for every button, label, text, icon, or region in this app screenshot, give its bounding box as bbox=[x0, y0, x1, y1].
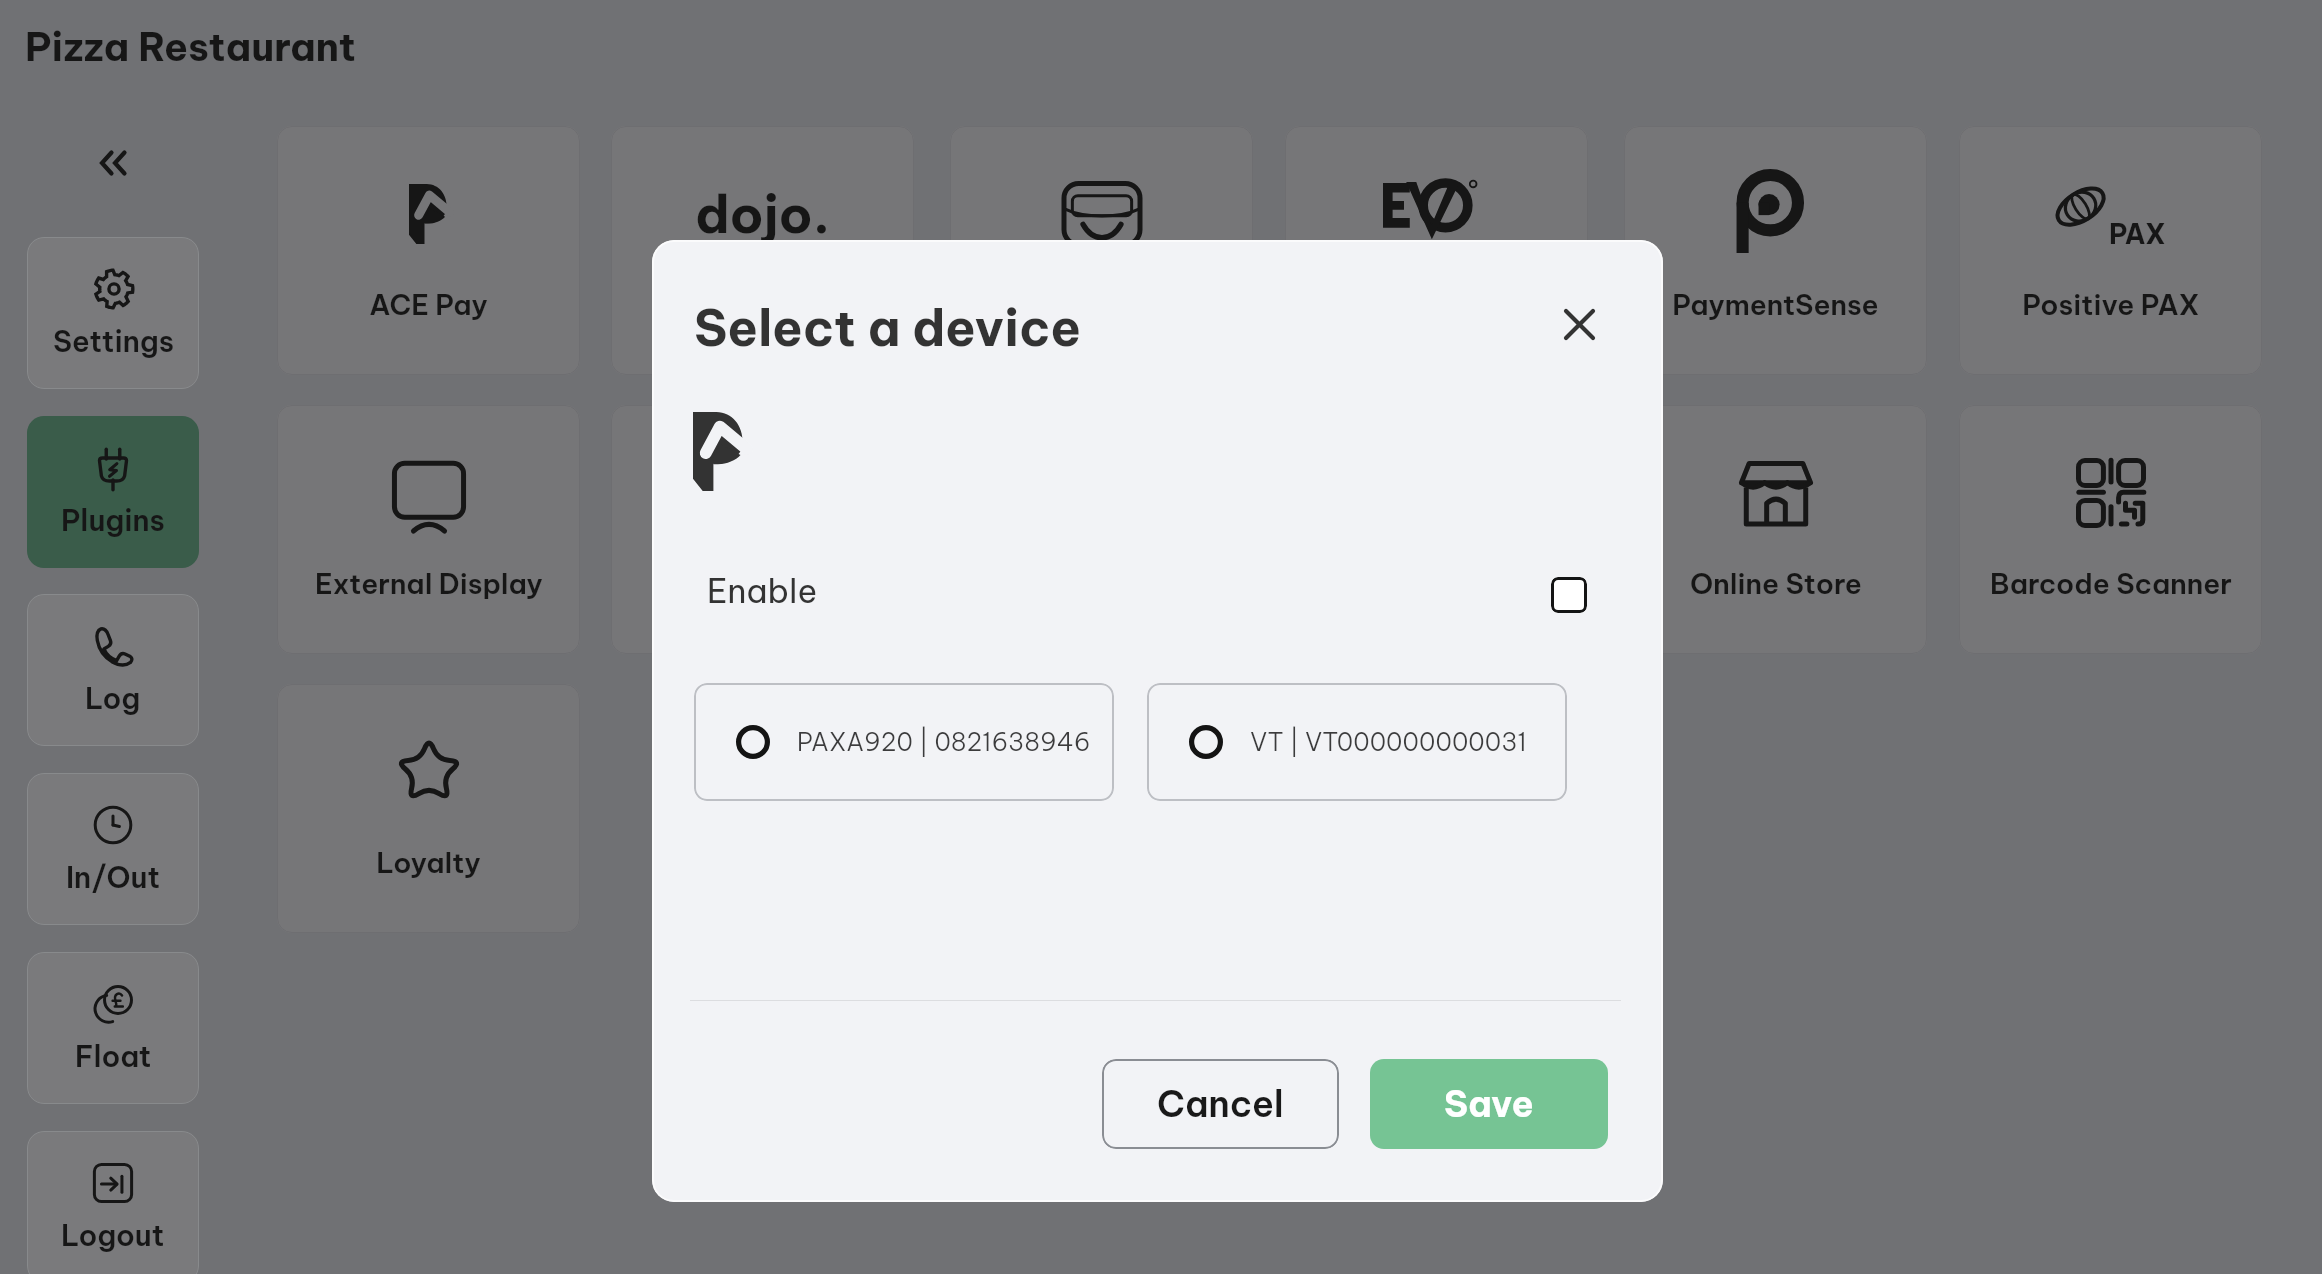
button[interactable]: Positive PAX bbox=[1959, 126, 2262, 375]
staticText: Plugins bbox=[61, 502, 165, 539]
staticText: PAXA920 | 0821638946 bbox=[797, 726, 1091, 758]
staticText: Save bbox=[1444, 1081, 1534, 1127]
button[interactable]: Logout bbox=[27, 1131, 199, 1274]
button[interactable]: External Display bbox=[277, 405, 580, 654]
button[interactable]: Enable bbox=[1551, 577, 1587, 613]
button[interactable]: ACE Pay bbox=[277, 126, 580, 375]
staticText: Online Store bbox=[1690, 566, 1862, 601]
button[interactable]: Collapse menu bbox=[83, 133, 143, 193]
staticText: Positive PAX bbox=[2022, 287, 2200, 322]
button[interactable]: Log bbox=[27, 594, 199, 746]
staticText: Pizza Restaurant bbox=[25, 22, 356, 71]
staticText: Logout bbox=[61, 1217, 165, 1254]
staticText: Barcode Scanner bbox=[1990, 566, 2232, 601]
staticText: ACE Pay bbox=[369, 287, 488, 322]
button[interactable]: Plugin bbox=[611, 405, 914, 654]
staticText: Pocket bbox=[1053, 287, 1151, 322]
staticText: Dojo bbox=[730, 287, 795, 322]
staticText: PaymentSense bbox=[1672, 287, 1879, 322]
staticText: Enable bbox=[707, 570, 818, 612]
staticText: VT | VT000000000031 bbox=[1250, 726, 1527, 758]
staticText: PAX bbox=[2109, 217, 2166, 251]
button[interactable]: Plugin bbox=[1285, 405, 1588, 654]
staticText: dojo. bbox=[695, 181, 831, 247]
button[interactable]: Float bbox=[27, 952, 199, 1104]
button[interactable]: Settings bbox=[27, 237, 199, 389]
staticText: External Display bbox=[315, 566, 543, 601]
button[interactable]: PaymentSense bbox=[1624, 126, 1927, 375]
staticText: Cancel bbox=[1157, 1081, 1284, 1127]
staticText: Log bbox=[85, 680, 141, 717]
button[interactable]: Dojo bbox=[611, 126, 914, 375]
button[interactable]: Loyalty bbox=[277, 684, 580, 933]
button[interactable]: EVO bbox=[1285, 126, 1588, 375]
button[interactable]: Close bbox=[1549, 294, 1609, 354]
button[interactable]: Barcode Scanner bbox=[1959, 405, 2262, 654]
button[interactable]: Online Store bbox=[1624, 405, 1927, 654]
button[interactable]: Cancel bbox=[1102, 1059, 1339, 1149]
staticText: Loyalty bbox=[376, 845, 481, 880]
staticText: Settings bbox=[53, 323, 174, 360]
button[interactable]: VT | VT000000000031 bbox=[1147, 683, 1567, 801]
button[interactable]: In/Out bbox=[27, 773, 199, 925]
staticText: Select a device bbox=[694, 296, 1082, 359]
button[interactable]: PAXA920 | 0821638946 bbox=[694, 683, 1114, 801]
button[interactable]: Plugins bbox=[27, 416, 199, 568]
button[interactable]: Save bbox=[1370, 1059, 1608, 1149]
staticText: Float bbox=[75, 1038, 152, 1075]
staticText: In/Out bbox=[66, 859, 160, 896]
button[interactable]: Pocket bbox=[950, 126, 1253, 375]
